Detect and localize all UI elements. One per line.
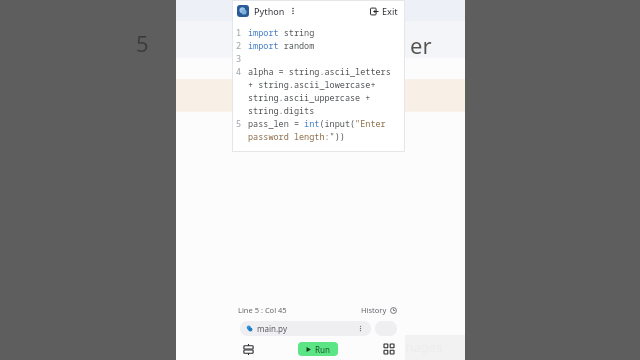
staticText: string.digits — [248, 105, 315, 117]
staticText: Python — [254, 5, 285, 17]
button[interactable]: File options — [356, 324, 365, 333]
staticText: Line 5 : Col 45 — [238, 305, 287, 315]
staticText: + string.ascii_lowercase+ — [248, 79, 376, 91]
staticText: 4 — [236, 66, 242, 78]
button[interactable]: Apps — [381, 341, 397, 357]
staticText: password length:")) — [248, 131, 345, 143]
staticText: string.ascii_uppercase + — [248, 92, 371, 104]
button[interactable]: Files — [240, 341, 256, 357]
button[interactable]: New tab — [375, 321, 397, 336]
staticText: Exit — [382, 5, 398, 17]
staticText: 2 — [236, 40, 242, 52]
staticText: History — [361, 305, 387, 315]
button[interactable]: History — [359, 303, 399, 317]
staticText: pass_len = int(input("Enter — [248, 118, 386, 130]
button[interactable]: Python language — [237, 5, 249, 17]
staticText: 1 — [236, 27, 242, 39]
staticText: 3 — [236, 53, 242, 65]
staticText: 5 — [236, 118, 242, 130]
staticText: 5 — [136, 28, 149, 58]
button[interactable]: main.py — [240, 321, 371, 336]
button[interactable]: Exit — [368, 3, 400, 19]
staticText: import random — [248, 40, 315, 52]
button[interactable]: Run — [298, 342, 338, 356]
staticText: er — [410, 30, 432, 60]
staticText: alpha = string.ascii_letters — [248, 66, 391, 78]
button[interactable]: More options — [288, 6, 298, 16]
staticText: Run — [315, 344, 331, 355]
staticText: import string — [248, 27, 315, 39]
staticText: main.py — [257, 323, 287, 334]
staticText: images — [398, 338, 443, 356]
